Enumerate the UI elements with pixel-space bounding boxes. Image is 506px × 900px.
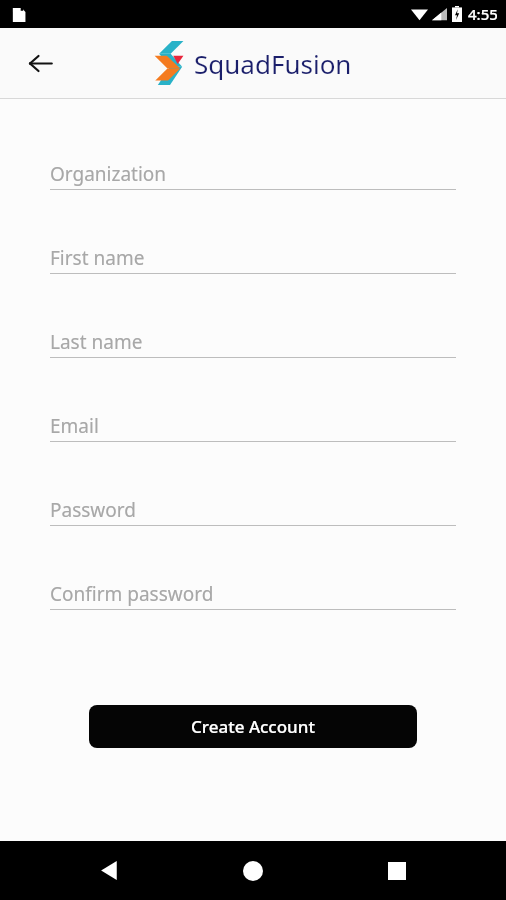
button[interactable]: Back (16, 39, 64, 87)
staticText: Last name (50, 329, 143, 355)
button[interactable]: Email (50, 412, 456, 496)
staticText: 4:55 (468, 4, 498, 24)
staticText: Organization (50, 161, 167, 187)
staticText: Password (50, 497, 136, 523)
staticText: SquadFusion (194, 46, 352, 81)
button[interactable]: First name (50, 244, 456, 328)
button[interactable]: Back (74, 841, 144, 900)
button[interactable]: Password (50, 496, 456, 580)
button[interactable]: Create Account (89, 705, 417, 748)
button[interactable]: Organization (50, 160, 456, 244)
staticText: Create Account (191, 715, 315, 738)
button[interactable]: Last name (50, 328, 456, 412)
button[interactable]: Home (218, 841, 288, 900)
button[interactable]: Confirm password (50, 580, 456, 664)
staticText: Email (50, 413, 99, 439)
staticText: Confirm password (50, 581, 214, 607)
staticText: First name (50, 245, 145, 271)
button[interactable]: Recent apps (362, 841, 432, 900)
